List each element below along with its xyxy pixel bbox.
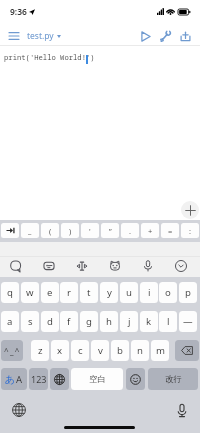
button[interactable]: Stickers	[38, 255, 60, 277]
button[interactable]: '	[81, 223, 99, 238]
button[interactable]: o	[159, 282, 177, 303]
button[interactable]: m	[151, 340, 169, 361]
button[interactable]: n	[131, 340, 149, 361]
staticText: r	[67, 286, 71, 299]
button[interactable]: v	[91, 340, 109, 361]
staticText: d	[47, 315, 53, 328]
button[interactable]: Next keyboard	[50, 368, 69, 390]
staticText: t	[87, 286, 91, 299]
staticText: '	[89, 226, 91, 236]
staticText: 9:36	[10, 6, 27, 18]
button[interactable]: z	[31, 340, 49, 361]
staticText: A	[16, 373, 23, 386]
staticText: m	[156, 344, 165, 357]
staticText: (	[49, 226, 52, 236]
staticText: w	[26, 286, 34, 299]
staticText: j	[128, 315, 131, 328]
button[interactable]: Adjust	[71, 255, 93, 277]
button[interactable]: (	[41, 223, 59, 238]
button[interactable]: p	[179, 282, 197, 303]
button[interactable]: q	[1, 282, 19, 303]
button[interactable]: —	[179, 311, 197, 332]
button[interactable]: ”	[101, 223, 119, 238]
staticText: test.py	[27, 30, 54, 42]
staticText: 空白	[89, 374, 106, 385]
staticText: s	[28, 315, 33, 328]
staticText: n	[137, 344, 143, 357]
staticText: q	[7, 286, 13, 299]
button[interactable]	[1, 223, 19, 238]
button[interactable]: c	[71, 340, 89, 361]
staticText: y	[107, 286, 112, 299]
button[interactable]: Dictate	[174, 402, 190, 418]
button[interactable]: b	[111, 340, 129, 361]
staticText: g	[86, 315, 92, 328]
staticText: あ	[5, 373, 16, 386]
staticText: u	[126, 286, 132, 299]
button[interactable]: Share	[179, 26, 192, 46]
button[interactable]: w	[21, 282, 39, 303]
button[interactable]: j	[120, 311, 138, 332]
staticText: :	[189, 226, 192, 236]
button[interactable]: Add	[181, 201, 199, 219]
staticText: 123	[31, 373, 47, 385]
staticText: o	[165, 286, 171, 299]
staticText: x	[57, 344, 63, 357]
button[interactable]: Settings	[159, 26, 171, 46]
staticText: f	[67, 315, 71, 328]
button[interactable]: k	[140, 311, 158, 332]
button[interactable]: 123	[29, 368, 48, 390]
button[interactable]: Run	[136, 26, 156, 46]
staticText: h	[106, 315, 112, 328]
staticText: )	[69, 226, 72, 236]
staticText: ^ _ ^	[4, 345, 20, 356]
button[interactable]: l	[159, 311, 177, 332]
staticText: k	[146, 315, 152, 328]
button[interactable]: :	[181, 223, 199, 238]
staticText: e	[47, 286, 53, 299]
button[interactable]: Collapse	[170, 255, 192, 277]
button[interactable]: あ	[1, 368, 27, 390]
button[interactable]: y	[100, 282, 118, 303]
button[interactable]: Memoji	[104, 255, 126, 277]
button[interactable]: )	[61, 223, 79, 238]
button[interactable]: Voice	[137, 255, 159, 277]
button[interactable]: Search	[5, 255, 27, 277]
staticText: —	[183, 315, 193, 328]
staticText: +	[148, 226, 153, 236]
button[interactable]: 改行	[148, 368, 198, 390]
button[interactable]: r	[60, 282, 78, 303]
button[interactable]: Change keyboard	[11, 402, 27, 418]
button[interactable]: i	[140, 282, 158, 303]
staticText: v	[98, 344, 103, 357]
button[interactable]: u	[120, 282, 138, 303]
button[interactable]: Emoji	[126, 368, 145, 390]
button[interactable]: Shift	[1, 340, 23, 361]
button[interactable]: Menu	[4, 26, 24, 46]
staticText: i	[148, 286, 151, 299]
button[interactable]: 空白	[71, 368, 123, 390]
button[interactable]: s	[21, 311, 39, 332]
staticText: =	[168, 226, 173, 236]
button[interactable]: f	[60, 311, 78, 332]
button[interactable]: e	[41, 282, 59, 303]
button[interactable]: .	[121, 223, 139, 238]
button[interactable]: g	[80, 311, 98, 332]
button[interactable]: h	[100, 311, 118, 332]
button[interactable]: =	[161, 223, 179, 238]
button[interactable]: _	[21, 223, 39, 238]
staticText: .	[129, 226, 132, 236]
staticText: p	[185, 286, 191, 299]
button[interactable]: test.py	[27, 28, 61, 44]
button[interactable]: x	[51, 340, 69, 361]
button[interactable]: d	[41, 311, 59, 332]
staticText: c	[78, 344, 83, 357]
button[interactable]: t	[80, 282, 98, 303]
button[interactable]: a	[1, 311, 19, 332]
button[interactable]: +	[141, 223, 159, 238]
staticText: b	[117, 344, 123, 357]
staticText: a	[7, 315, 13, 328]
staticText: print('Hello World!')	[4, 52, 95, 62]
button[interactable]: Backspace	[175, 340, 199, 361]
staticText: _	[28, 226, 32, 236]
